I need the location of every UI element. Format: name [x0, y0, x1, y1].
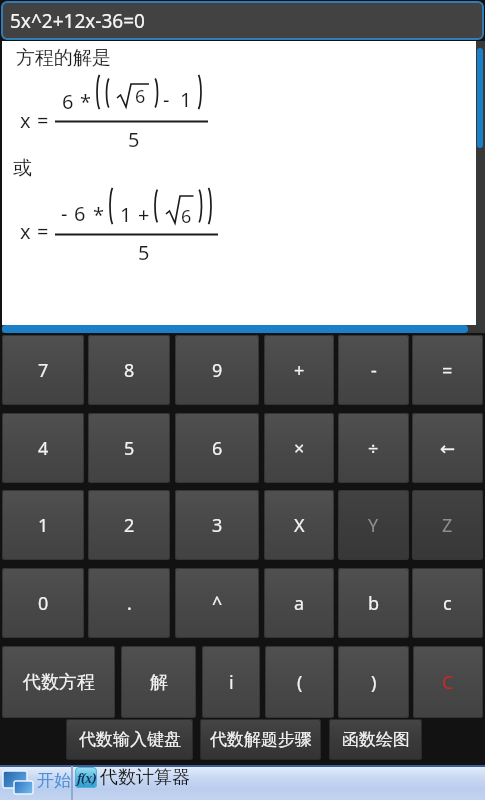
staticText: 5 [138, 239, 150, 266]
button[interactable]: 7 [2, 335, 84, 405]
button[interactable]: - [338, 335, 409, 405]
button[interactable]: 解 [121, 646, 196, 718]
staticText: * [93, 201, 105, 228]
staticText: x [20, 107, 31, 134]
staticText: c [443, 591, 452, 616]
staticText: 代数计算器 [100, 766, 190, 789]
button[interactable]: X [264, 490, 334, 560]
button[interactable]: 1 [2, 490, 84, 560]
staticText: 1 [180, 86, 192, 113]
staticText: ^ [212, 591, 223, 616]
button[interactable]: 0 [2, 568, 84, 638]
staticText: Z [442, 513, 453, 538]
staticText: ) [371, 670, 377, 695]
staticText: × [294, 436, 305, 461]
staticText: f(x) [77, 770, 96, 786]
staticText: * [80, 88, 92, 115]
button[interactable]: 9 [175, 335, 259, 405]
button[interactable]: ← [412, 413, 483, 483]
staticText: = [37, 107, 49, 134]
staticText: 6 [62, 88, 74, 115]
button[interactable] [2, 769, 36, 799]
staticText: 6 [181, 204, 192, 229]
staticText: 代数输入键盘 [79, 729, 181, 750]
staticText: 5x^2+12x-36=0 [10, 8, 145, 34]
button[interactable]: 8 [88, 335, 170, 405]
staticText: ÷ [368, 436, 379, 461]
staticText: 8 [124, 358, 135, 383]
staticText: a [294, 591, 305, 616]
staticText: 3 [212, 513, 223, 538]
staticText: i [229, 670, 234, 695]
button[interactable]: + [264, 335, 334, 405]
staticText: + [294, 358, 305, 383]
staticText: X [294, 513, 305, 538]
staticText: - [371, 358, 377, 383]
staticText: 6 [74, 200, 86, 227]
staticText: 或 [13, 156, 32, 180]
button[interactable]: 代数解题步骤 [200, 719, 321, 760]
staticText: C [442, 670, 454, 695]
button[interactable]: 5 [88, 413, 170, 483]
staticText: 5 [124, 436, 135, 461]
staticText: 代数解题步骤 [210, 729, 312, 750]
button[interactable]: Y [338, 490, 409, 560]
staticText: 7 [38, 358, 49, 383]
button[interactable]: ÷ [338, 413, 409, 483]
staticText: x [20, 218, 31, 245]
staticText: 9 [212, 358, 223, 383]
button[interactable]: 4 [2, 413, 84, 483]
button[interactable]: i [202, 646, 260, 718]
button[interactable]: Z [412, 490, 483, 560]
button[interactable]: × [264, 413, 334, 483]
button[interactable] [75, 767, 97, 788]
staticText: - [61, 200, 68, 227]
staticText: 解 [150, 671, 168, 694]
staticText: 6 [212, 436, 223, 461]
staticText: 6 [135, 84, 146, 109]
staticText: 5 [128, 126, 140, 153]
staticText: 代数方程 [23, 671, 95, 694]
staticText: 1 [120, 201, 132, 228]
staticText: ← [440, 438, 456, 459]
staticText: Y [368, 513, 379, 538]
staticText: - [163, 86, 170, 113]
staticText: 1 [38, 513, 49, 538]
staticText: + [138, 201, 150, 228]
button[interactable]: 函数绘图 [329, 719, 422, 760]
staticText: 函数绘图 [342, 729, 410, 750]
button[interactable]: . [88, 568, 170, 638]
staticText: 方程的解是 [16, 46, 111, 70]
staticText: = [442, 358, 453, 383]
button[interactable]: = [412, 335, 483, 405]
staticText: ( [297, 670, 303, 695]
staticText: 0 [38, 591, 49, 616]
button[interactable]: ( [265, 646, 334, 718]
button[interactable]: 5x^2+12x-36=0 [1, 1, 484, 40]
button[interactable]: 2 [88, 490, 170, 560]
button[interactable]: 代数方程 [2, 646, 115, 718]
button[interactable]: 代数输入键盘 [66, 719, 193, 760]
button[interactable]: ^ [175, 568, 259, 638]
button[interactable]: b [338, 568, 409, 638]
button[interactable]: ) [338, 646, 409, 718]
button[interactable]: C [413, 646, 483, 718]
button[interactable]: 3 [175, 490, 259, 560]
staticText: . [127, 591, 132, 616]
staticText: 开始 [37, 770, 71, 791]
staticText: b [368, 591, 380, 616]
staticText: 4 [38, 436, 49, 461]
button[interactable]: c [412, 568, 483, 638]
button[interactable]: a [264, 568, 334, 638]
staticText: = [37, 218, 49, 245]
button[interactable]: 6 [175, 413, 259, 483]
staticText: 2 [124, 513, 135, 538]
